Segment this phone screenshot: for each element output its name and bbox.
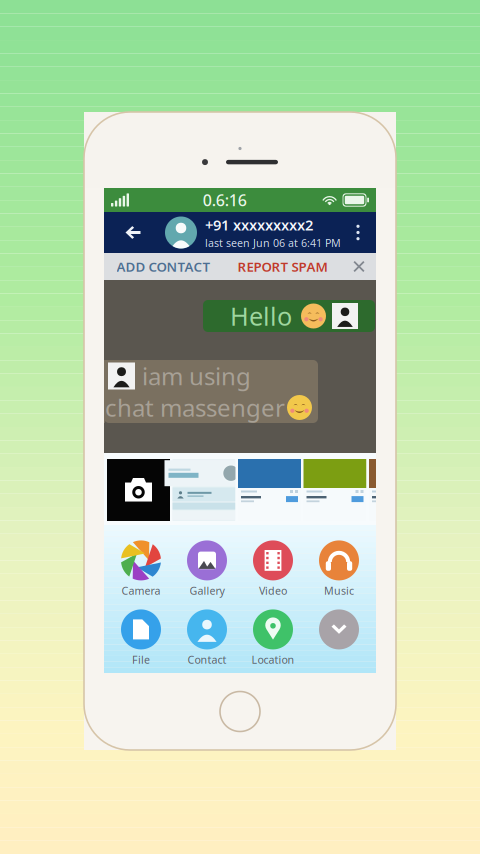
staticText: Location [251, 652, 294, 667]
staticText: Music [324, 583, 354, 598]
button[interactable]: Photo 4 [369, 459, 432, 521]
button[interactable]: More options [346, 212, 370, 253]
staticText: Contact [187, 652, 226, 667]
staticText: iam using [142, 360, 251, 392]
button[interactable]: Music [306, 538, 372, 600]
button[interactable]: Location [240, 607, 306, 669]
staticText: ADD CONTACT [116, 258, 210, 275]
button[interactable]: Dismiss [342, 253, 376, 280]
button[interactable]: +91 xxxxxxxxx2 [165, 212, 346, 253]
button[interactable]: Camera [108, 538, 174, 600]
staticText: chat massenger [105, 392, 285, 423]
staticText: File [132, 652, 150, 667]
staticText: REPORT SPAM [237, 258, 327, 275]
button[interactable]: ADD CONTACT [104, 253, 223, 280]
button[interactable]: Gallery [174, 538, 240, 600]
staticText: last seen Jun 06 at 6:41 PM [205, 236, 341, 250]
button[interactable]: File [108, 607, 174, 669]
button[interactable]: Photo 1 [172, 459, 235, 521]
button[interactable]: Video [240, 538, 306, 600]
button[interactable]: REPORT SPAM [223, 253, 342, 280]
button[interactable]: Photo 2 [238, 459, 301, 521]
button[interactable]: Back [118, 212, 148, 253]
button[interactable] [306, 607, 372, 669]
staticText: +91 xxxxxxxxx2 [205, 215, 313, 235]
button[interactable]: Photo 3 [303, 459, 366, 521]
staticText: Gallery [189, 583, 224, 598]
staticText: Video [259, 583, 287, 598]
button[interactable]: Contact [174, 607, 240, 669]
staticText: Camera [121, 583, 160, 598]
staticText: 0.6:16 [203, 189, 247, 211]
staticText: Hello [230, 299, 292, 333]
button[interactable]: Take photo [107, 459, 170, 521]
